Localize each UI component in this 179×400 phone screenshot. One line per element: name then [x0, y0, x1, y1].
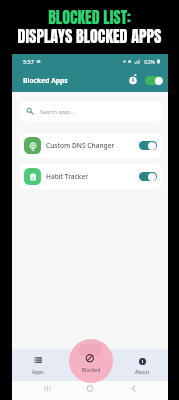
staticText: Habit Tracker [46, 172, 89, 181]
staticText: DISPLAYS BLOCKED APPS [0, 24, 179, 48]
staticText: Apps [32, 369, 44, 376]
button[interactable]: Apps [12, 349, 64, 381]
button[interactable]: Enable blocking [145, 76, 163, 85]
staticText: Blocked Apps [23, 76, 68, 85]
staticText: Blocked [81, 369, 100, 376]
button[interactable]: Habit Tracker [20, 164, 162, 189]
staticText: Custom DNS Changer [46, 141, 115, 150]
button[interactable]: Search apps... [20, 101, 162, 121]
button[interactable]: Custom DNS Changer [20, 133, 162, 158]
button[interactable]: Timer [126, 74, 138, 86]
button[interactable]: Blocked tab [69, 339, 113, 383]
button[interactable]: Blocked [64, 349, 116, 381]
staticText: Search apps... [40, 108, 76, 115]
staticText: About [135, 369, 150, 376]
staticText: 5:57 [23, 58, 34, 65]
staticText: 92% [144, 58, 155, 65]
staticText: Blocked [69, 367, 113, 374]
button[interactable]: Toggle Custom DNS Changer [139, 141, 157, 150]
staticText: BLOCKED LIST: [0, 5, 179, 29]
button[interactable]: About [116, 349, 168, 381]
button[interactable]: Toggle Habit Tracker [139, 172, 157, 181]
